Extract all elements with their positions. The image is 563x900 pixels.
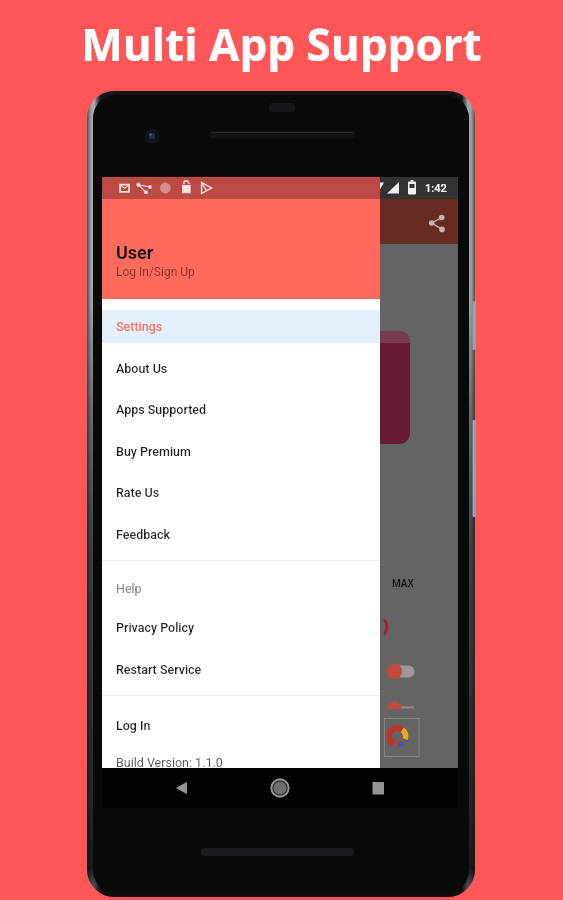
staticText: Log In [116, 718, 151, 733]
staticText: Buy Premium [116, 444, 191, 459]
staticText: Build Version: 1.1.0 [116, 755, 223, 770]
staticText: MAX [392, 578, 414, 590]
button[interactable]: Back [160, 768, 204, 808]
button[interactable]: Privacy Policy [102, 608, 380, 646]
staticText: 1:42 [425, 182, 447, 195]
staticText: Help [116, 581, 142, 596]
staticText: Feedback [116, 527, 170, 542]
button[interactable] [102, 310, 380, 343]
button[interactable]: About Us [102, 349, 380, 387]
staticText: Apps Supported [116, 402, 207, 417]
button[interactable]: Buy Premium [102, 432, 380, 470]
button[interactable]: Apps Supported [102, 390, 380, 428]
button[interactable]: Settings [102, 307, 380, 345]
staticText: Log In/Sign Up [116, 265, 195, 279]
button[interactable]: Share [420, 206, 454, 240]
staticText: User [116, 242, 154, 263]
button[interactable]: Home [258, 768, 302, 808]
button[interactable]: Recent apps [356, 768, 400, 808]
button[interactable]: Feedback [102, 515, 380, 553]
button[interactable]: Log In [102, 706, 380, 744]
button[interactable]: Rate Us [102, 473, 380, 511]
button[interactable]: Restart Service [102, 650, 380, 688]
staticText: Multi App Support [81, 14, 482, 74]
staticText: About Us [116, 361, 168, 376]
staticText: Privacy Policy [116, 620, 195, 635]
staticText: Restart Service [116, 662, 202, 677]
staticText: Rate Us [116, 485, 160, 500]
staticText: Settings [116, 319, 163, 334]
